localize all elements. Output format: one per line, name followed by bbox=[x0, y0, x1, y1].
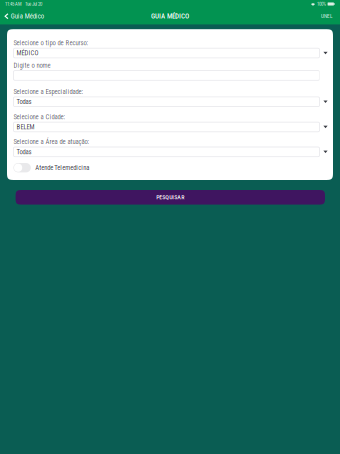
button[interactable]: Atende Telemedicina bbox=[13, 163, 89, 172]
button[interactable]: Todas bbox=[13, 97, 331, 107]
staticText: Selecione a Especialidade: bbox=[13, 88, 83, 96]
staticText: 11:45 AM Tue Jul 20 bbox=[5, 1, 42, 7]
staticText: UNEL bbox=[321, 13, 333, 19]
staticText: MÉDICO bbox=[17, 49, 39, 57]
button[interactable]: Todas bbox=[13, 147, 331, 157]
staticText: PESQUISAR bbox=[156, 194, 184, 201]
staticText: Todas bbox=[17, 148, 32, 156]
staticText: Guia Médico bbox=[11, 12, 44, 20]
staticText: Digite o nome bbox=[13, 61, 50, 69]
staticText: 100% bbox=[317, 1, 326, 7]
staticText: GUIA MÉDICO bbox=[151, 12, 189, 20]
staticText: BELEM bbox=[17, 123, 35, 131]
button[interactable]: BELEM bbox=[13, 122, 331, 132]
button[interactable]: Guia Médico bbox=[0, 8, 50, 24]
button[interactable]: MÉDICO bbox=[13, 48, 331, 58]
staticText: Selecione a Cidade: bbox=[13, 113, 65, 121]
staticText: Selecione a Área de atuação: bbox=[13, 138, 89, 146]
staticText: Todas bbox=[17, 98, 32, 106]
staticText: Selecione o tipo de Recurso: bbox=[13, 39, 88, 47]
button[interactable]: UNEL bbox=[314, 8, 340, 24]
button[interactable]: PESQUISAR bbox=[16, 190, 325, 205]
staticText: Atende Telemedicina bbox=[35, 164, 89, 172]
